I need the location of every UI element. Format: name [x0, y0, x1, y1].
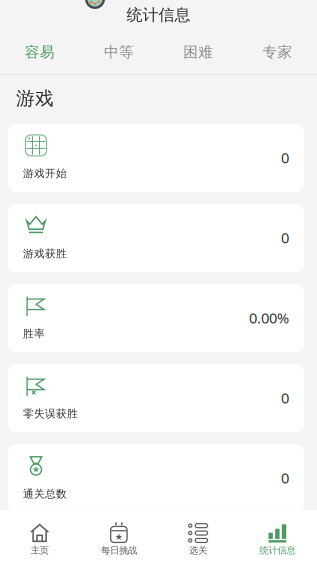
staticText: 游戏获胜 [23, 247, 67, 260]
button[interactable]: 困难 [158, 30, 238, 74]
staticText: 0 [281, 228, 289, 247]
staticText: 0 [281, 148, 289, 167]
staticText: 游戏开始 [23, 167, 67, 180]
staticText: 容易 [25, 43, 55, 61]
button[interactable]: 通关总数 [8, 444, 304, 512]
staticText: 游戏 [16, 87, 54, 110]
staticText: 0 [281, 388, 289, 408]
staticText: 通关总数 [23, 487, 67, 500]
staticText: 0 [281, 468, 289, 488]
staticText: 每日挑战 [101, 544, 137, 556]
button[interactable]: 主页 [0, 523, 79, 556]
staticText: 0.00% [249, 308, 289, 327]
staticText: 专家 [262, 43, 292, 61]
staticText: 零失误获胜 [23, 407, 78, 420]
button[interactable]: 游戏开始 [8, 124, 304, 192]
staticText: 胜率 [23, 327, 45, 340]
staticText: 主页 [31, 544, 49, 556]
button[interactable]: 游戏获胜 [8, 204, 304, 272]
button[interactable]: 统计信息 [238, 523, 317, 556]
button[interactable]: 每日挑战 [79, 523, 158, 556]
button[interactable]: 胜率 [8, 284, 304, 352]
staticText: 选关 [189, 544, 207, 556]
staticText: 困难 [183, 43, 213, 61]
staticText: 统计信息 [259, 544, 295, 556]
button[interactable]: 零失误获胜 [8, 364, 304, 432]
button[interactable]: 中等 [79, 30, 158, 74]
button[interactable]: 专家 [238, 30, 317, 74]
button[interactable]: 选关 [158, 523, 238, 556]
staticText: 统计信息 [126, 5, 190, 25]
button[interactable]: 容易 [0, 30, 79, 74]
staticText: 中等 [104, 43, 134, 61]
